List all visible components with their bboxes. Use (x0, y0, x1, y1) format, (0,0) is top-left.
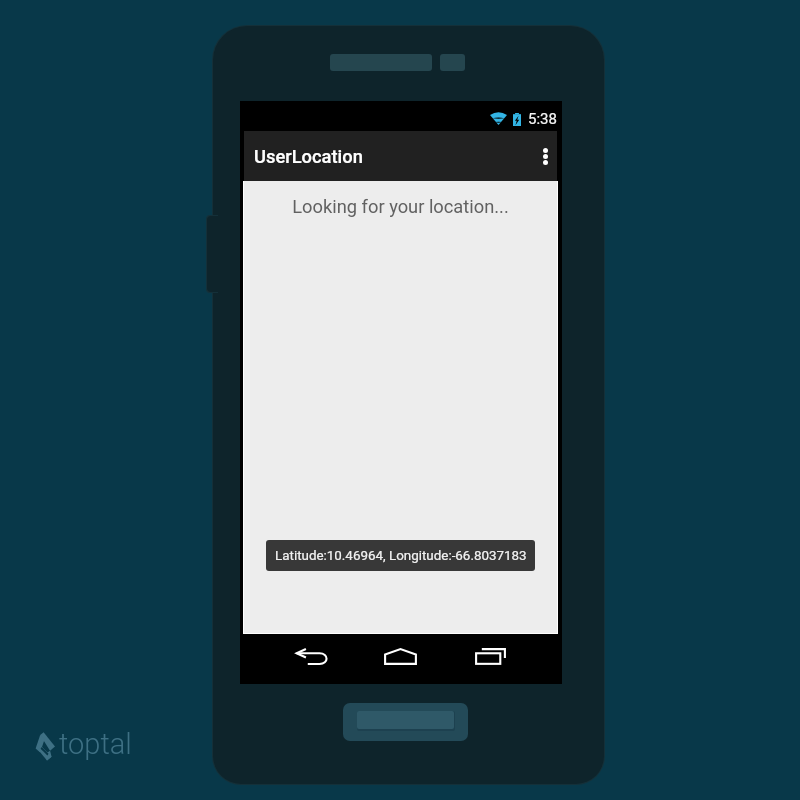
staticText: toptal (59, 727, 132, 761)
button[interactable]: Home (378, 633, 423, 679)
button[interactable]: More options (534, 131, 557, 181)
staticText: Latitude:10.46964, Longitude:-66.8037183 (275, 548, 527, 564)
staticText: UserLocation (254, 146, 534, 167)
button[interactable]: Back (289, 633, 334, 679)
staticText: Looking for your location... (244, 196, 557, 217)
staticText: 5:38 (528, 110, 557, 128)
button[interactable]: Recent apps (468, 633, 513, 679)
